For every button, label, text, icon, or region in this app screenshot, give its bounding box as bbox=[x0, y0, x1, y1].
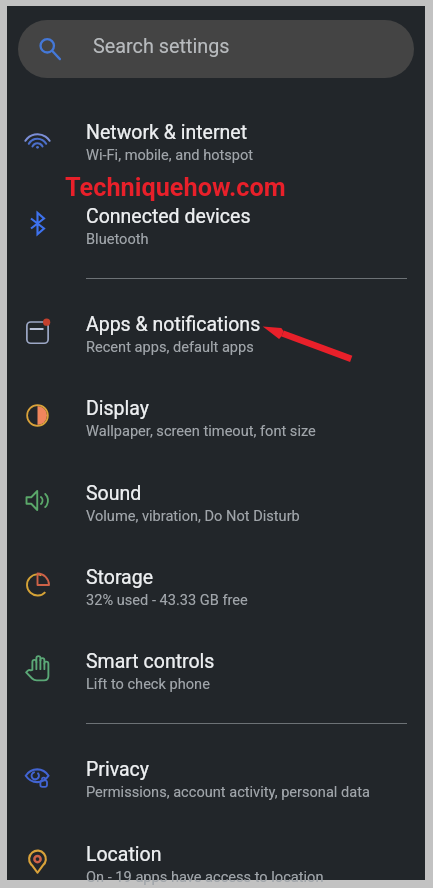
button[interactable]: Location bbox=[7, 818, 425, 888]
button[interactable]: Privacy bbox=[7, 733, 425, 817]
staticText: Sound bbox=[86, 482, 142, 505]
staticText: Display bbox=[86, 397, 149, 420]
button[interactable]: Network & internet bbox=[7, 96, 425, 180]
staticText: Volume, vibration, Do Not Disturb bbox=[86, 507, 300, 524]
staticText: On - 19 apps have access to location bbox=[86, 868, 324, 885]
staticText: Storage bbox=[86, 566, 154, 589]
button[interactable]: Connected devices bbox=[7, 180, 425, 264]
button[interactable]: Sound bbox=[7, 457, 425, 541]
button[interactable]: Display bbox=[7, 372, 425, 456]
staticText: Techniquehow.com bbox=[65, 173, 286, 203]
button[interactable]: Apps & notifications bbox=[7, 288, 425, 372]
staticText: Wi-Fi, mobile, and hotspot bbox=[86, 146, 254, 163]
button[interactable]: Search bbox=[18, 20, 414, 78]
button[interactable]: Smart controls bbox=[7, 625, 425, 709]
staticText: Recent apps, default apps bbox=[86, 338, 254, 355]
staticText: Wallpaper, screen timeout, font size bbox=[86, 422, 316, 439]
staticText: Lift to check phone bbox=[86, 675, 210, 692]
staticText: Smart controls bbox=[86, 650, 215, 673]
staticText: Bluetooth bbox=[86, 230, 149, 247]
staticText: Privacy bbox=[86, 758, 149, 781]
staticText: Network & internet bbox=[86, 121, 248, 144]
staticText: Connected devices bbox=[86, 205, 251, 228]
button[interactable]: Storage bbox=[7, 541, 425, 625]
staticText: 32% used - 43.33 GB free bbox=[86, 591, 248, 608]
staticText: Search settings bbox=[93, 35, 230, 58]
staticText: Location bbox=[86, 843, 162, 866]
other: Search bbox=[39, 38, 61, 60]
staticText: Apps & notifications bbox=[86, 313, 261, 336]
staticText: Permissions, account activity, personal … bbox=[86, 783, 370, 800]
